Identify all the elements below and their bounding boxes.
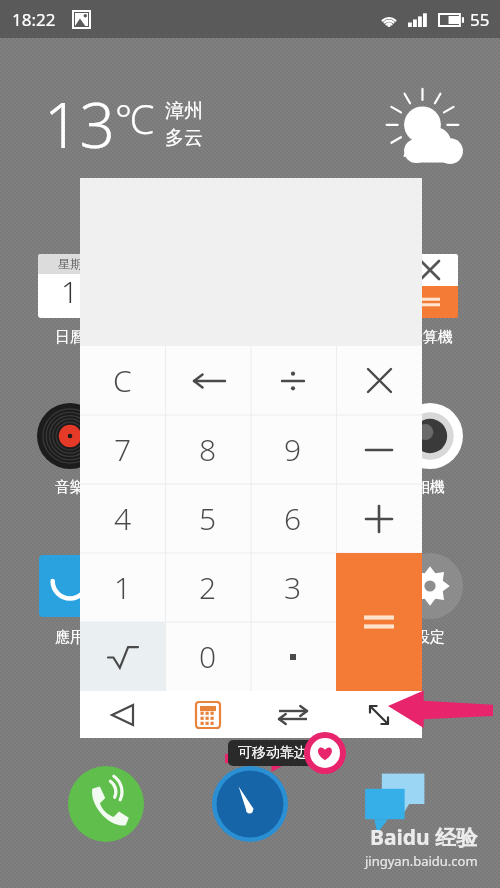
button[interactable] bbox=[336, 553, 422, 691]
staticText: 8 bbox=[199, 429, 217, 470]
button[interactable]: Messages bbox=[356, 766, 432, 842]
staticText: 1 bbox=[61, 271, 79, 312]
button[interactable]: Expand bbox=[336, 691, 422, 738]
staticText: 應用 bbox=[55, 628, 85, 647]
button[interactable]: Convert bbox=[250, 691, 336, 738]
staticText: 18:22 bbox=[12, 8, 56, 31]
staticText: 6 bbox=[284, 498, 302, 539]
staticText: 可移动靠边 bbox=[238, 744, 308, 762]
button[interactable]: 計算機 bbox=[390, 250, 470, 347]
button[interactable]: 8 bbox=[165, 415, 250, 484]
button[interactable] bbox=[80, 622, 165, 691]
button[interactable] bbox=[336, 415, 422, 484]
button[interactable]: Calculator mode bbox=[165, 691, 250, 738]
staticText: 漳州 bbox=[165, 99, 203, 123]
staticText: 2 bbox=[199, 567, 217, 608]
staticText: jingyan.baidu.com bbox=[365, 852, 478, 870]
staticText: 5 bbox=[199, 498, 217, 539]
button[interactable] bbox=[336, 484, 422, 553]
button[interactable]: 設定 bbox=[390, 550, 470, 647]
button[interactable]: 3 bbox=[250, 553, 336, 622]
button[interactable] bbox=[250, 622, 336, 691]
staticText: Baidu 经验 bbox=[370, 823, 478, 852]
staticText: 9 bbox=[284, 429, 302, 470]
button[interactable]: 5 bbox=[165, 484, 250, 553]
button[interactable]: Back bbox=[80, 691, 165, 738]
button[interactable]: C bbox=[80, 346, 165, 415]
staticText: 7 bbox=[114, 429, 132, 470]
button[interactable]: 應用 bbox=[30, 550, 110, 647]
staticText: C bbox=[113, 360, 132, 401]
button[interactable] bbox=[336, 346, 422, 415]
button[interactable]: 7 bbox=[80, 415, 165, 484]
button[interactable]: 2 bbox=[165, 553, 250, 622]
button[interactable]: 0 bbox=[165, 622, 250, 691]
button[interactable] bbox=[165, 346, 250, 415]
button[interactable]: 1 bbox=[80, 553, 165, 622]
staticText: 音樂 bbox=[55, 478, 85, 497]
staticText: 13 bbox=[44, 82, 115, 166]
button[interactable] bbox=[250, 346, 336, 415]
staticText: 設定 bbox=[415, 628, 445, 647]
staticText: 4 bbox=[114, 498, 132, 539]
staticText: 多云 bbox=[165, 126, 203, 150]
button[interactable]: 相機 bbox=[390, 400, 470, 497]
staticText: 55 bbox=[470, 8, 490, 31]
button[interactable]: 4 bbox=[80, 484, 165, 553]
staticText: 0 bbox=[199, 636, 217, 677]
button[interactable]: 星期 bbox=[30, 250, 110, 347]
button[interactable]: 音樂 bbox=[30, 400, 110, 497]
staticText: 1 bbox=[114, 567, 132, 608]
staticText: 計算機 bbox=[408, 328, 453, 347]
staticText: ℃ bbox=[115, 91, 155, 145]
staticText: 日曆 bbox=[55, 328, 85, 347]
staticText: 星期 bbox=[58, 256, 82, 271]
staticText: 3 bbox=[284, 567, 302, 608]
button[interactable]: Phone bbox=[68, 766, 144, 842]
staticText: 相機 bbox=[415, 478, 445, 497]
button[interactable]: 9 bbox=[250, 415, 336, 484]
button[interactable]: 6 bbox=[250, 484, 336, 553]
button[interactable]: Browser bbox=[212, 766, 288, 842]
